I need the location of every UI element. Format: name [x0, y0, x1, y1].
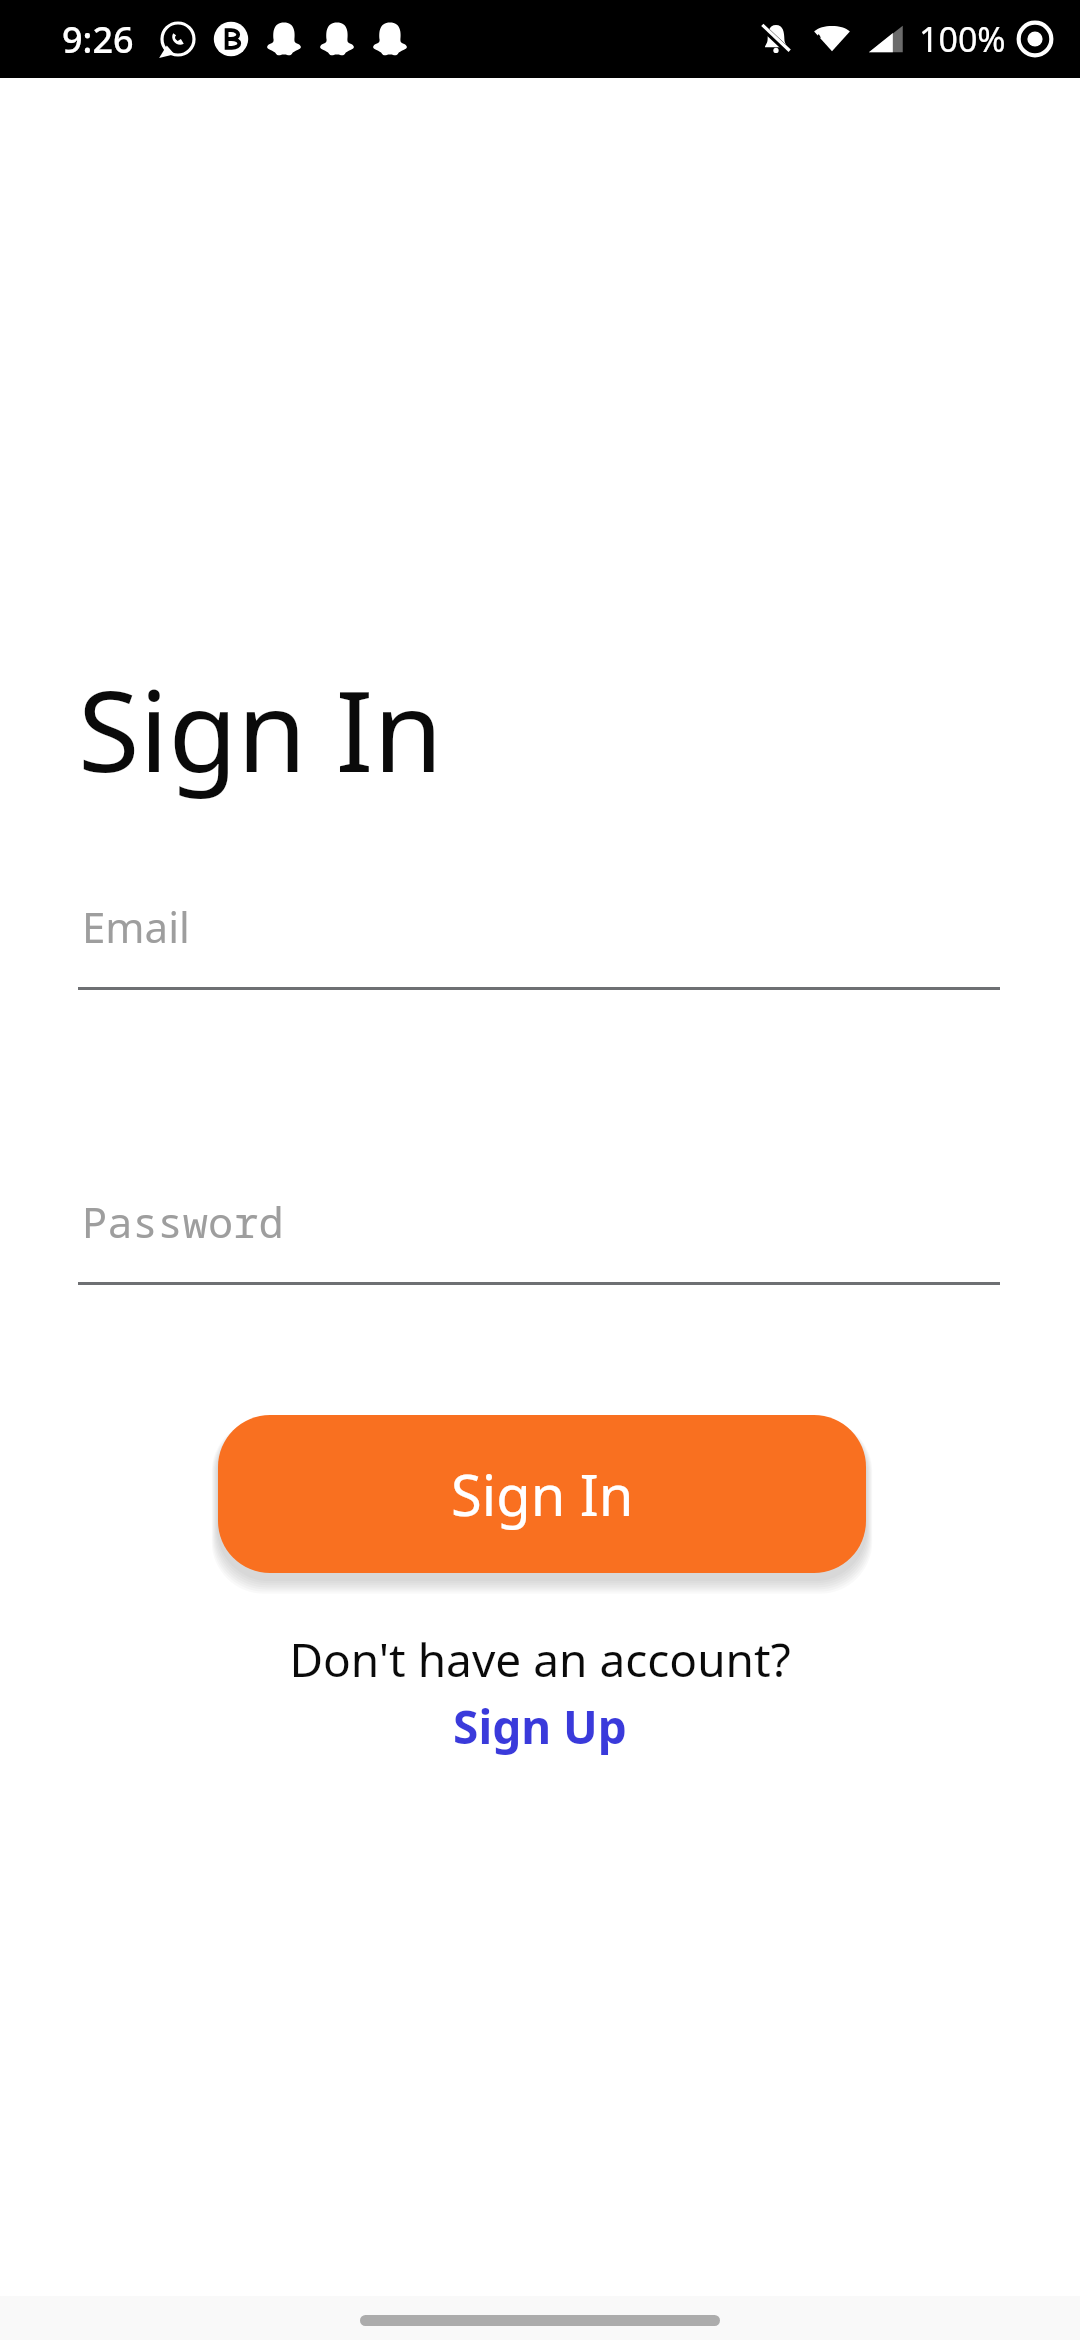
button[interactable]: Password	[78, 1175, 1000, 1285]
button[interactable]: Sign In	[218, 1415, 866, 1573]
staticText: Don't have an account?	[289, 1628, 791, 1691]
other: Snapchat	[317, 19, 357, 59]
button[interactable]: Email	[78, 880, 1000, 990]
staticText: Sign In	[78, 652, 443, 805]
other: Battery	[1016, 20, 1054, 58]
staticText: Password	[82, 1193, 284, 1250]
other: Notification	[211, 19, 251, 59]
other: Snapchat	[370, 19, 410, 59]
button[interactable]: Sign Up	[453, 1695, 627, 1758]
other: WhatsApp	[158, 19, 198, 59]
staticText: 9:26	[62, 15, 134, 64]
other: Wi-Fi	[813, 20, 851, 58]
other: Silent mode	[757, 20, 795, 58]
staticText: Email	[82, 898, 190, 955]
other: Signal	[867, 20, 905, 58]
staticText: Sign In	[451, 1456, 634, 1532]
other: Snapchat	[264, 19, 304, 59]
staticText: Sign Up	[453, 1695, 627, 1758]
staticText: 100%	[919, 16, 1006, 62]
